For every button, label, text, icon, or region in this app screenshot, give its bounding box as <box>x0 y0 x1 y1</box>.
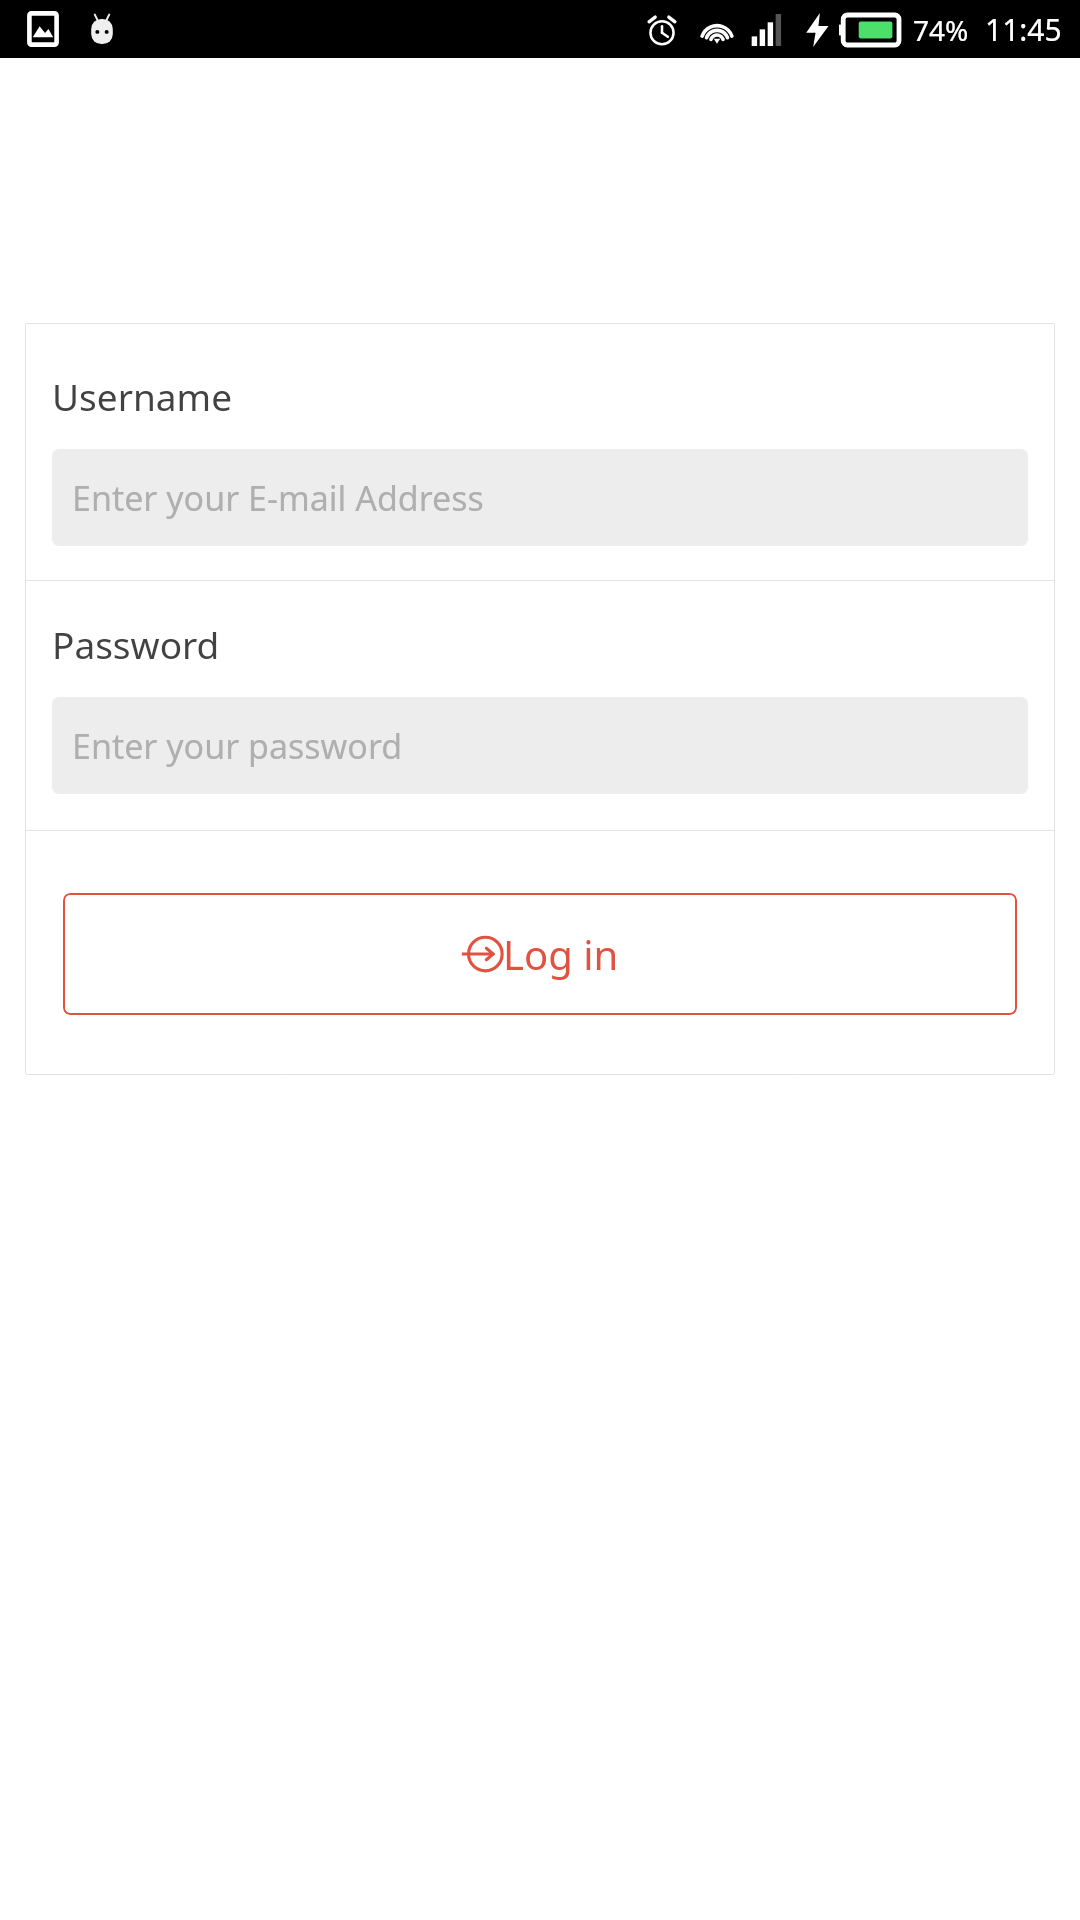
button[interactable]: Enter your E-mail Address <box>52 449 1028 546</box>
staticText: Enter your password <box>72 723 403 769</box>
staticText: Username <box>52 371 233 421</box>
other: Log in <box>461 933 503 975</box>
button[interactable]: Enter your password <box>52 697 1028 794</box>
staticText: Password <box>52 619 220 669</box>
staticText: Log in <box>503 927 619 981</box>
staticText: 74% <box>913 11 969 49</box>
staticText: 11:45 <box>985 9 1062 50</box>
button[interactable]: Log in <box>63 893 1017 1015</box>
staticText: Enter your E-mail Address <box>72 475 484 521</box>
